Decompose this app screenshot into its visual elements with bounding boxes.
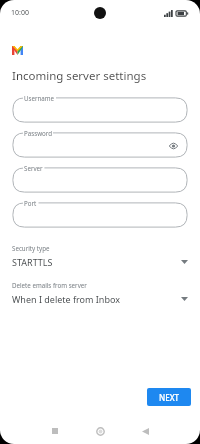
- button[interactable]: NEXT: [147, 388, 191, 406]
- staticText: STARTTLS: [12, 256, 181, 268]
- staticText: Delete emails from server: [12, 281, 87, 289]
- staticText: 10:00: [11, 8, 29, 18]
- button[interactable]: Server: [12, 167, 188, 193]
- button[interactable]: Port: [12, 202, 188, 228]
- staticText: When I delete from Inbox: [12, 293, 181, 305]
- staticText: Password: [24, 129, 52, 137]
- button[interactable]: Home: [83, 419, 117, 443]
- button[interactable]: Password: [12, 132, 188, 158]
- button[interactable]: Security type: [0, 244, 200, 268]
- staticText: NEXT: [159, 392, 180, 403]
- button[interactable]: Recent apps: [38, 419, 72, 443]
- staticText: Server: [24, 164, 43, 172]
- staticText: Port: [24, 199, 37, 207]
- staticText: Security type: [12, 244, 50, 252]
- button[interactable]: Delete emails from server: [0, 281, 200, 305]
- button[interactable]: Back: [128, 419, 162, 443]
- button[interactable]: Username: [12, 97, 188, 123]
- staticText: Incoming server settings: [12, 68, 147, 84]
- staticText: Username: [24, 94, 55, 102]
- button[interactable]: Show password: [167, 139, 180, 152]
